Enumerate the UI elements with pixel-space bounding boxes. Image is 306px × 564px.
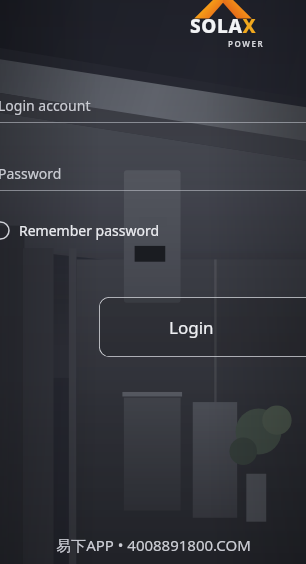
staticText: Login account (0, 96, 91, 115)
staticText: Remember password (19, 221, 160, 240)
staticText: SOLAX (190, 13, 257, 39)
staticText: Login (169, 316, 214, 339)
staticText: POWER (228, 38, 265, 49)
staticText: 易下APP • 4008891800.COM (56, 535, 251, 555)
button[interactable]: Password (0, 156, 306, 190)
button[interactable]: Login account (0, 88, 306, 122)
staticText: Password (0, 164, 62, 183)
button[interactable]: Login (99, 297, 306, 357)
button[interactable]: Remember password (0, 213, 191, 247)
